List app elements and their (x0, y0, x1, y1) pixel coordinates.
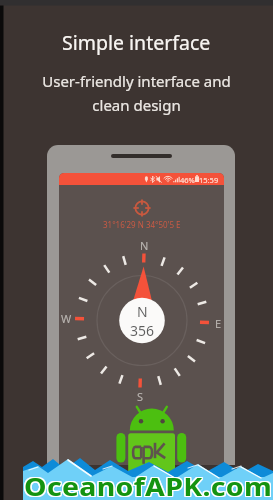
staticText: OceanofAPK.com (25, 468, 273, 500)
staticText: OceanofAPK.com (23, 468, 271, 500)
button[interactable]: Locate me (132, 198, 152, 218)
staticText: N (137, 302, 148, 321)
staticText: S (137, 389, 144, 404)
staticText: OceanofAPK.com (23, 470, 271, 500)
button[interactable]: Status bar (59, 173, 224, 185)
staticText: E (215, 316, 222, 331)
staticText: 15:59 (199, 175, 219, 185)
staticText: Simple interface (62, 29, 211, 56)
staticText: N (140, 238, 149, 253)
staticText: OceanofAPK.com (24, 468, 272, 500)
staticText: OceanofAPK.com (23, 469, 271, 500)
staticText: OceanofAPK.com (24, 470, 272, 500)
staticText: OceanofAPK.com (25, 469, 273, 500)
staticText: 356 (130, 321, 155, 340)
staticText: User-friendly interface and clean design (42, 71, 231, 115)
staticText: W (61, 311, 72, 326)
staticText: OceanofAPK.com (25, 470, 273, 500)
button[interactable]: OceanofAPK.com (24, 469, 272, 500)
staticText: 31°16'29 N 34°50'5 E (103, 219, 181, 230)
staticText: OceanofAPK.com (24, 469, 272, 500)
staticText: 46% (180, 175, 195, 185)
